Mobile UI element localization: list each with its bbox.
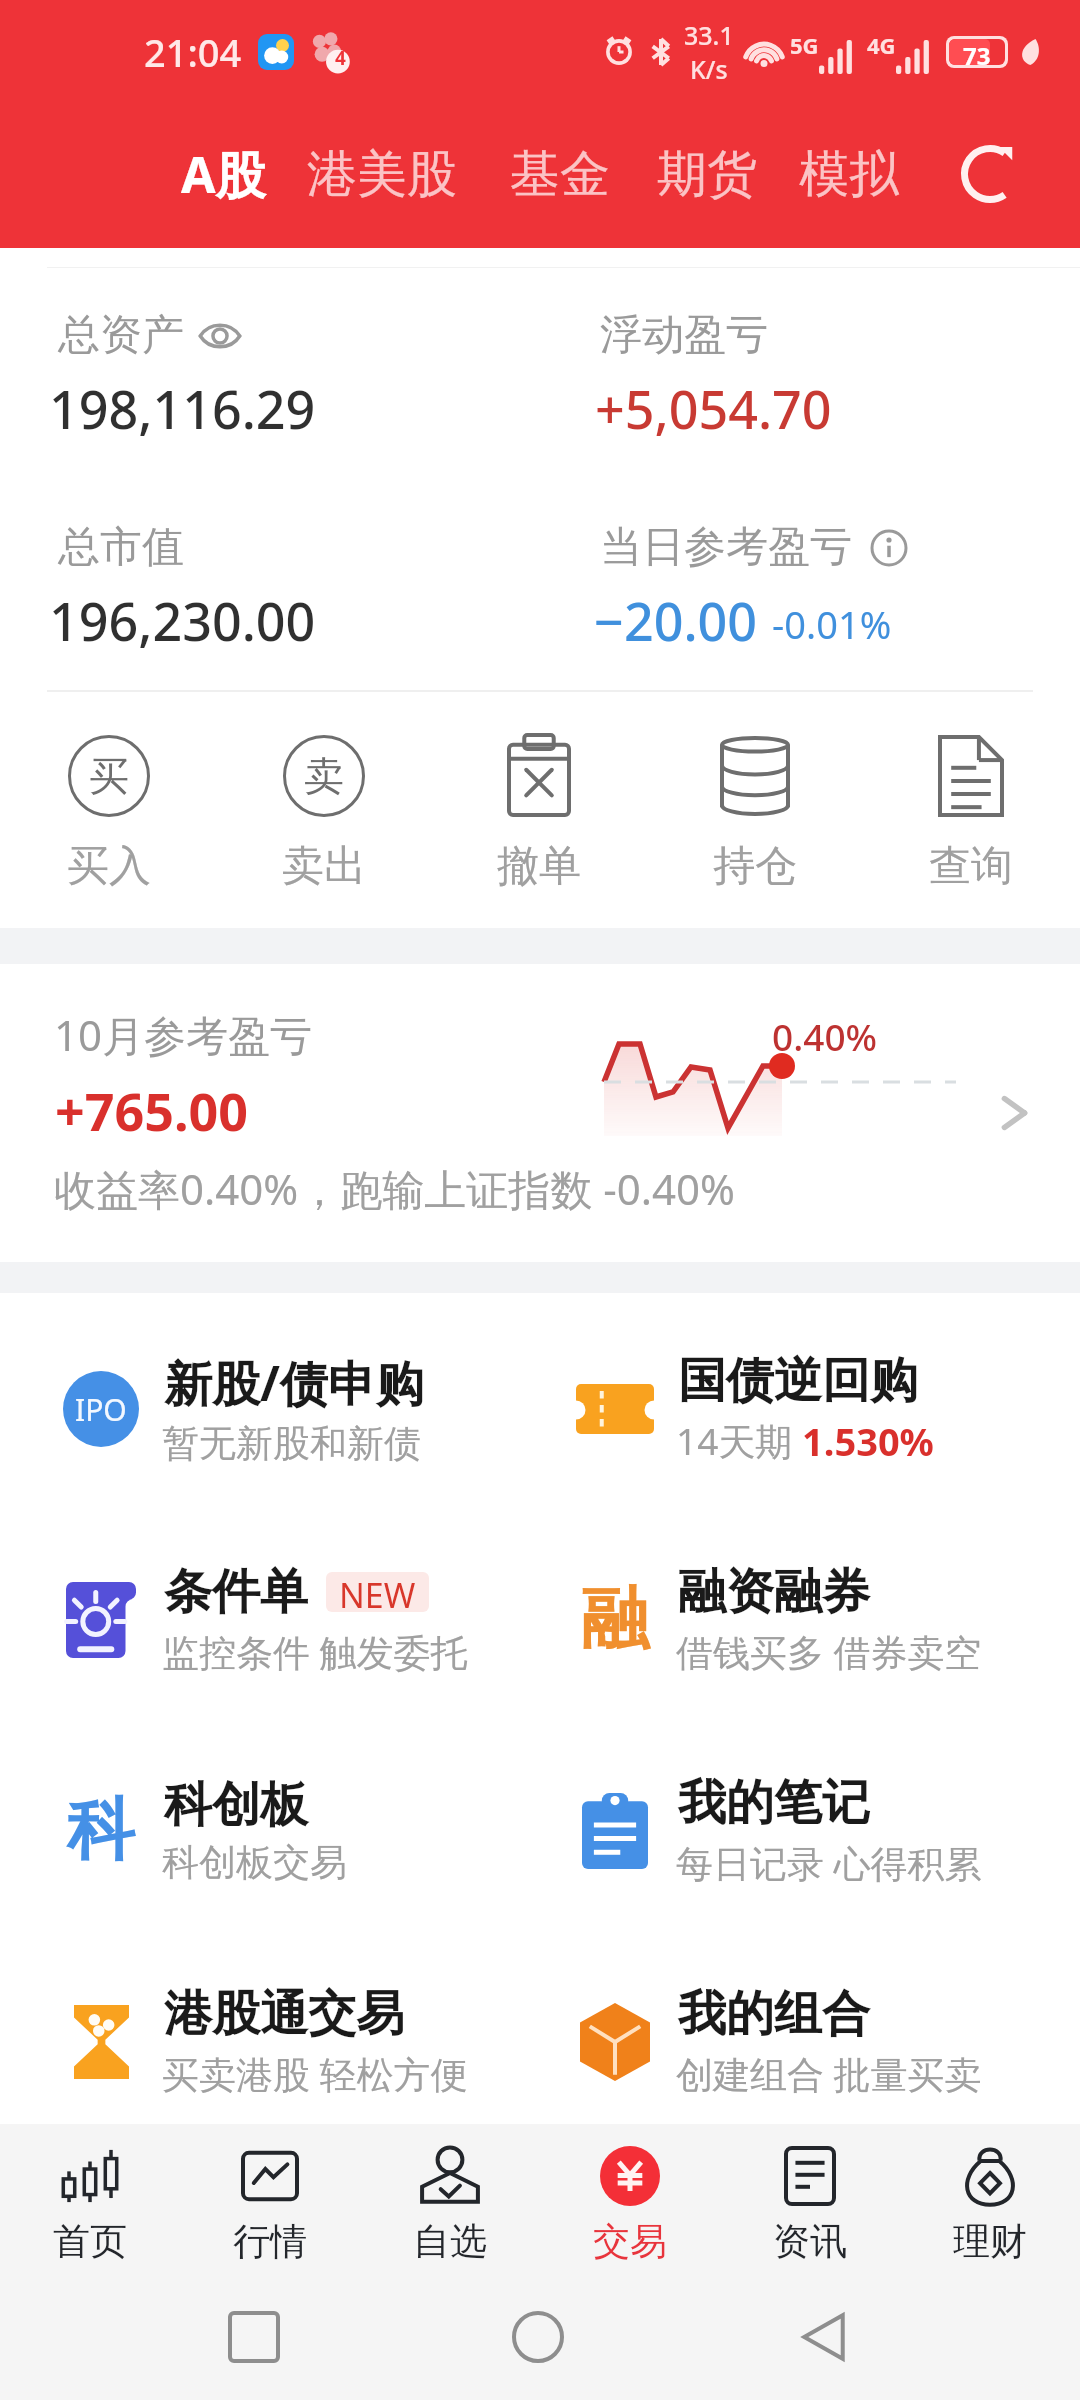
staticText: 基金 — [510, 143, 610, 206]
staticText: 4G — [867, 30, 896, 60]
button[interactable]: 国债逆回购 — [514, 1347, 1080, 1470]
button[interactable]: 买 — [1, 732, 216, 895]
staticText: A股 — [181, 140, 266, 208]
staticText: 查询 — [929, 840, 1013, 893]
staticText: +765.00 — [55, 1075, 249, 1146]
staticText: 198,116.29 — [49, 373, 316, 444]
button[interactable]: 模拟 — [799, 133, 899, 216]
staticText: 撤单 — [497, 840, 581, 893]
staticText: 浮动盈亏 — [600, 309, 768, 362]
button[interactable]: 资讯 — [720, 2124, 900, 2274]
staticText: 10月参考盈亏 — [54, 1006, 313, 1063]
staticText: 4 — [335, 45, 346, 71]
staticText: 持仓 — [713, 840, 797, 893]
button[interactable]: 我的笔记 — [514, 1769, 1080, 1892]
staticText: 21:04 — [144, 26, 242, 78]
staticText: 资讯 — [773, 2218, 847, 2265]
button[interactable]: 隐藏金额 — [198, 321, 242, 351]
button[interactable]: 查询 — [863, 732, 1079, 895]
button[interactable]: 期货 — [657, 133, 757, 216]
staticText: 监控条件 触发委托 — [162, 1626, 468, 1677]
staticText: 港股通交易 — [164, 1984, 404, 2044]
staticText: 科创板交易 — [162, 1839, 347, 1886]
staticText: 卖 — [304, 751, 344, 801]
staticText: 创建组合 批量买卖 — [676, 2048, 982, 2099]
staticText: 总资产 — [58, 309, 184, 362]
staticText: 73 — [963, 39, 991, 65]
button[interactable]: IPO — [0, 1347, 514, 1470]
staticText: 每日记录 心得积累 — [676, 1837, 982, 1888]
button[interactable]: 刷新 — [946, 130, 1034, 218]
button[interactable]: 我的组合 — [514, 1980, 1080, 2103]
staticText: 交易 — [593, 2218, 667, 2265]
staticText: 5G — [790, 30, 819, 60]
button[interactable]: 融 — [514, 1558, 1080, 1681]
button[interactable]: 港股通交易 — [0, 1980, 514, 2103]
staticText: 行情 — [233, 2218, 307, 2265]
button[interactable]: 科 — [0, 1769, 514, 1892]
staticText: 暂无新股和新债 — [162, 1420, 421, 1467]
staticText: IPO — [75, 1389, 127, 1430]
staticText: 我的笔记 — [678, 1773, 870, 1833]
staticText: 首页 — [53, 2218, 127, 2265]
button[interactable]: 最近任务 — [230, 2313, 278, 2361]
staticText: -0.01% — [772, 598, 892, 650]
staticText: 卖出 — [282, 840, 366, 893]
staticText: 新股/债申购 — [164, 1350, 424, 1416]
staticText: 196,230.00 — [49, 585, 316, 656]
button[interactable]: 持仓 — [647, 732, 863, 895]
button[interactable]: 卖 — [216, 732, 431, 895]
staticText: 融资融券 — [678, 1562, 870, 1622]
button[interactable]: 行情 — [180, 2124, 360, 2274]
staticText: 买入 — [67, 840, 151, 893]
staticText: 收益率0.40%，跑输上证指数 -0.40% — [54, 1160, 735, 1217]
button[interactable]: 自选 — [360, 2124, 540, 2274]
button[interactable]: 港美股 — [307, 133, 457, 216]
staticText: 国债逆回购 — [678, 1351, 918, 1411]
button[interactable]: 基金 — [510, 133, 610, 216]
staticText: 14天期 — [676, 1415, 802, 1466]
staticText: 期货 — [657, 143, 757, 206]
staticText: K/s — [690, 52, 728, 86]
staticText: 我的组合 — [678, 1984, 870, 2044]
staticText: 借钱买多 借券卖空 — [676, 1626, 982, 1677]
staticText: 买卖港股 轻松方便 — [162, 2048, 468, 2099]
staticText: 买 — [89, 751, 129, 801]
staticText: −20.00 — [594, 585, 758, 656]
staticText: 0.40% — [772, 1011, 878, 1061]
button[interactable]: 说明 — [870, 529, 908, 567]
staticText: 当日参考盈亏 — [600, 521, 852, 574]
button[interactable]: 10月参考盈亏 — [0, 964, 1080, 1262]
staticText: +5,054.70 — [595, 373, 832, 444]
staticText: 33.1 — [684, 18, 734, 52]
button[interactable]: 返回 — [798, 2311, 850, 2363]
button[interactable]: 交易 — [540, 2124, 720, 2274]
staticText: 1.530% — [802, 1415, 934, 1467]
staticText: 条件单 — [164, 1562, 308, 1622]
staticText: 融 — [581, 1577, 649, 1663]
button[interactable]: 撤单 — [431, 732, 647, 895]
button[interactable]: 主页 — [512, 2311, 564, 2363]
staticText: 总市值 — [58, 521, 184, 574]
staticText: 科 — [67, 1788, 135, 1874]
button[interactable]: A股 — [181, 130, 266, 218]
staticText: NEW — [339, 1572, 416, 1612]
staticText: 自选 — [413, 2218, 487, 2265]
staticText: 模拟 — [799, 143, 899, 206]
button[interactable]: 条件单 — [0, 1558, 514, 1681]
button[interactable]: 理财 — [900, 2124, 1080, 2274]
staticText: 港美股 — [307, 143, 457, 206]
button[interactable]: 首页 — [0, 2124, 180, 2274]
staticText: 理财 — [953, 2218, 1027, 2265]
staticText: 科创板 — [164, 1775, 308, 1835]
